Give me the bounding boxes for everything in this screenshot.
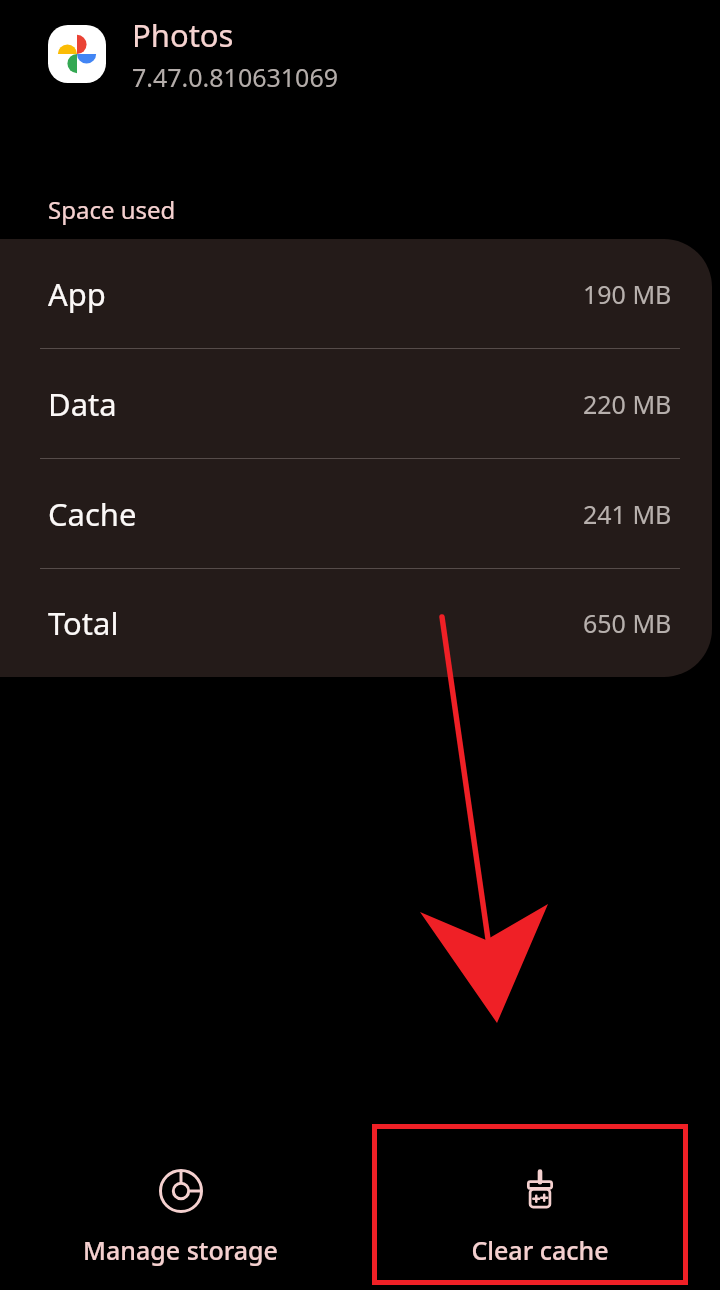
staticText: Manage storage [83,1233,278,1267]
staticText: Photos [132,14,234,56]
staticText: 7.47.0.810631069 [132,60,339,94]
button[interactable]: Manage storage [0,1130,360,1290]
staticText: Total [48,602,119,644]
staticText: Clear cache [471,1233,609,1267]
staticText: Space used [48,193,176,226]
staticText: 650 MB [583,606,672,640]
staticText: Data [48,383,117,425]
staticText: Cache [48,493,137,535]
button[interactable]: Clear cache [360,1130,720,1290]
staticText: 190 MB [583,277,672,311]
button[interactable]: Cache [0,459,712,568]
button[interactable]: Total [0,569,712,677]
button[interactable]: App [0,239,712,348]
staticText: 241 MB [583,497,672,531]
staticText: 220 MB [583,387,672,421]
staticText: App [48,273,106,315]
button[interactable]: Data [0,349,712,458]
